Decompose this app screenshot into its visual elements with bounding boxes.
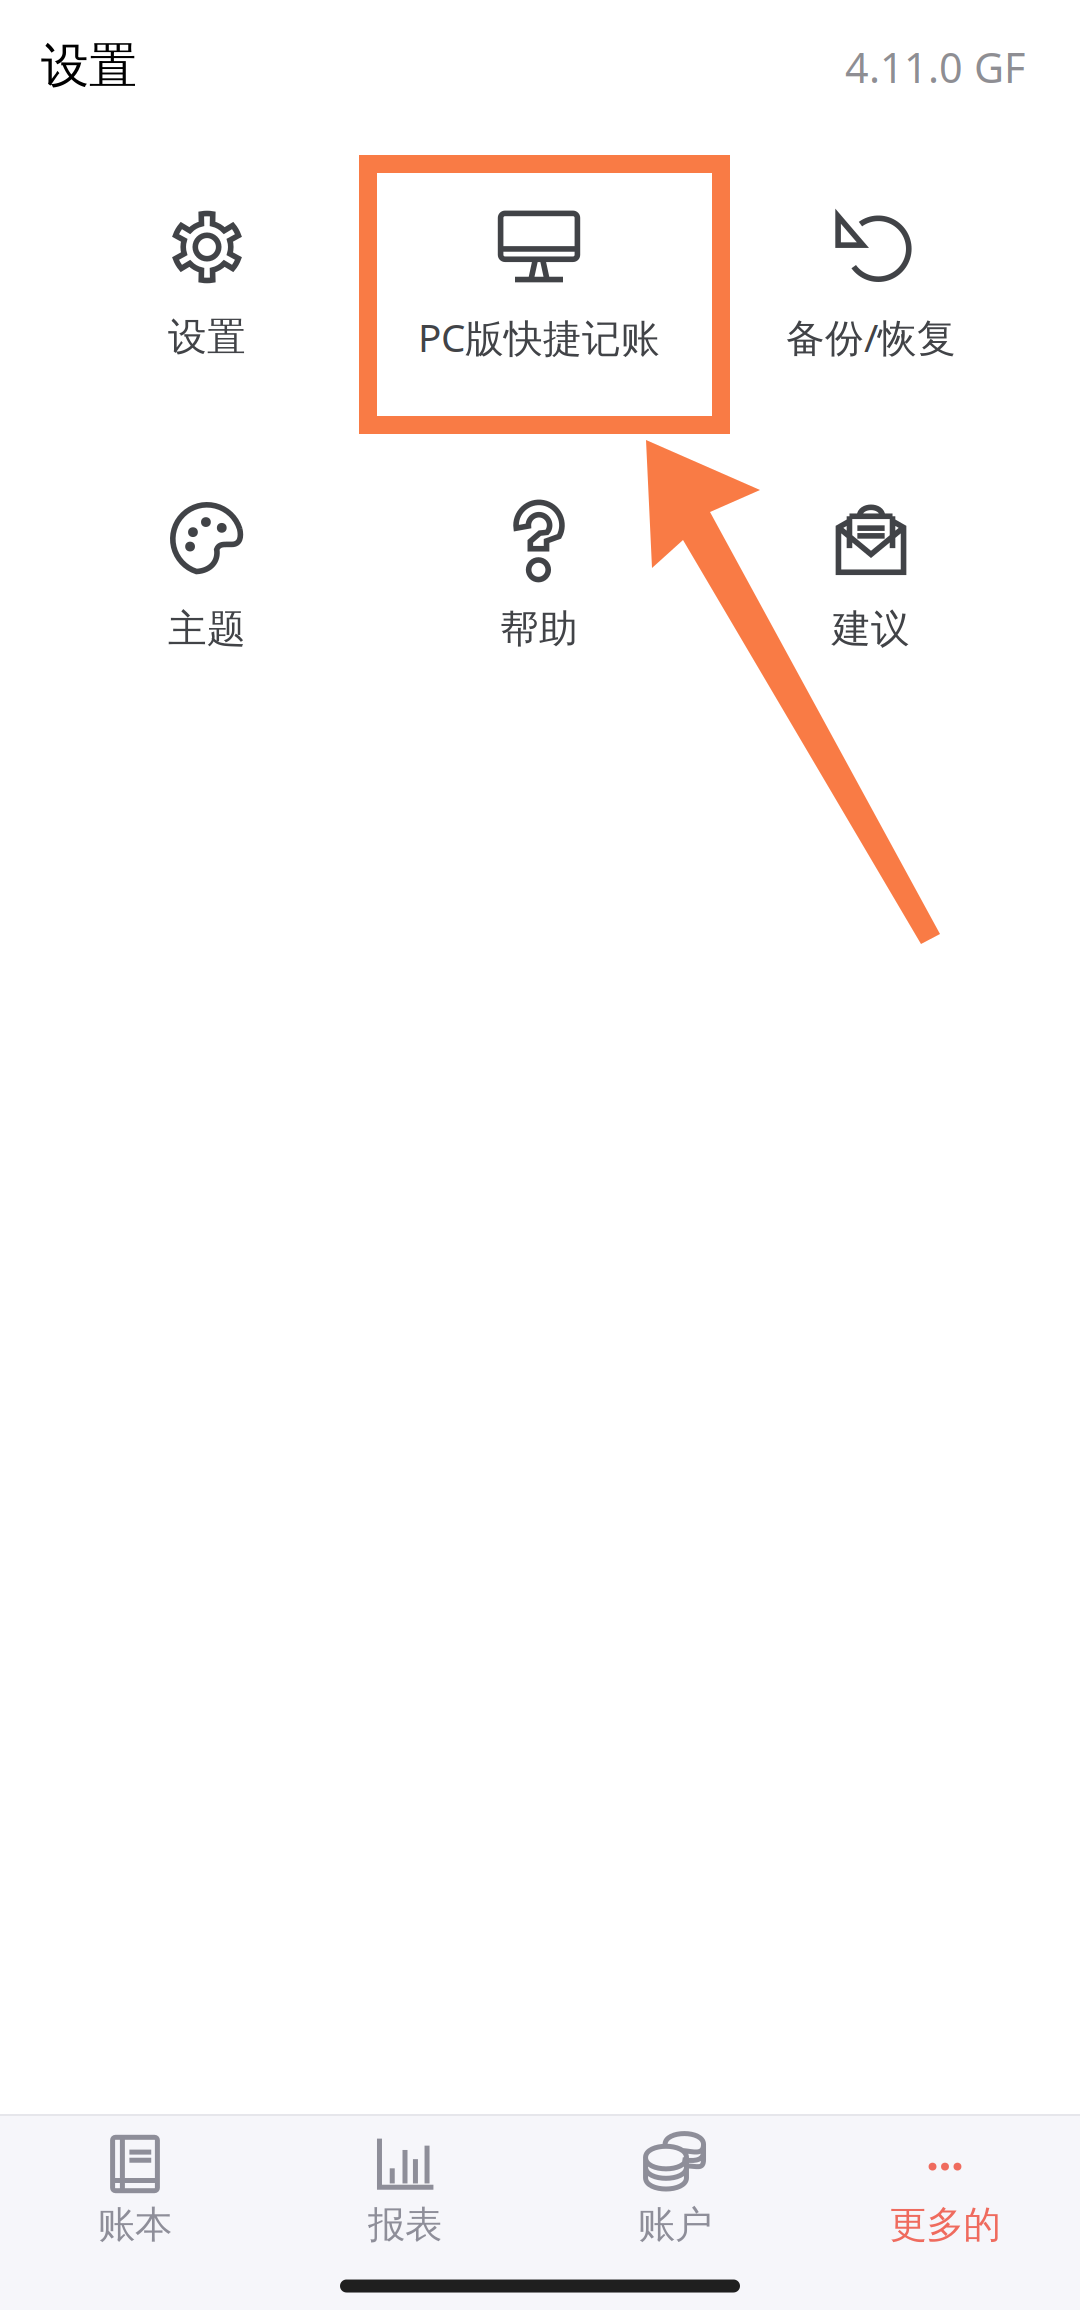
- staticText: 账户: [638, 2202, 712, 2248]
- button[interactable]: 建议: [691, 493, 1051, 673]
- button[interactable]: 报表: [270, 2116, 540, 2266]
- staticText: 4.11.0 GF: [845, 40, 1025, 94]
- staticText: 账本: [98, 2202, 172, 2248]
- staticText: 报表: [368, 2202, 442, 2248]
- button[interactable]: 账户: [540, 2116, 810, 2266]
- staticText: 更多的: [889, 2202, 1000, 2248]
- staticText: PC版快捷记账: [418, 311, 660, 363]
- button[interactable]: PC版快捷记账: [359, 201, 719, 381]
- button[interactable]: 设置: [41, 36, 241, 95]
- staticText: 主题: [168, 605, 246, 653]
- button[interactable]: 设置: [27, 201, 387, 381]
- staticText: 设置: [168, 313, 246, 361]
- staticText: 备份/恢复: [786, 311, 956, 363]
- button[interactable]: 主题: [27, 493, 387, 673]
- button[interactable]: 备份/恢复: [691, 201, 1051, 381]
- button[interactable]: 账本: [0, 2116, 270, 2266]
- staticText: 设置: [41, 36, 137, 95]
- button[interactable]: 帮助: [359, 493, 719, 673]
- button[interactable]: 更多的: [810, 2116, 1080, 2266]
- staticText: 帮助: [500, 605, 578, 653]
- staticText: 建议: [832, 605, 910, 653]
